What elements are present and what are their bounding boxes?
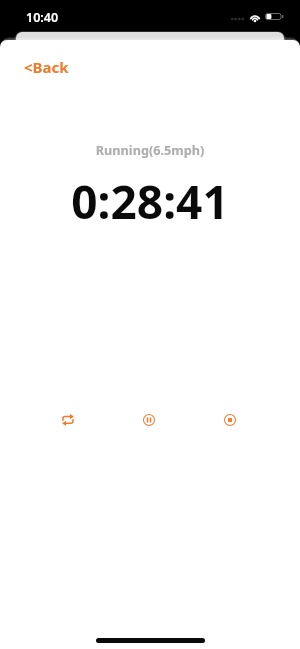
staticText: 10:40 [26, 9, 59, 26]
staticText: 0:28:41 [0, 170, 300, 233]
button[interactable]: <Back [17, 51, 76, 83]
button[interactable]: Stop [213, 403, 247, 437]
button[interactable]: Pause [132, 403, 166, 437]
staticText: Running(6.5mph) [0, 141, 300, 158]
staticText: <Back [24, 57, 69, 77]
button[interactable]: Switch workout [51, 403, 85, 437]
